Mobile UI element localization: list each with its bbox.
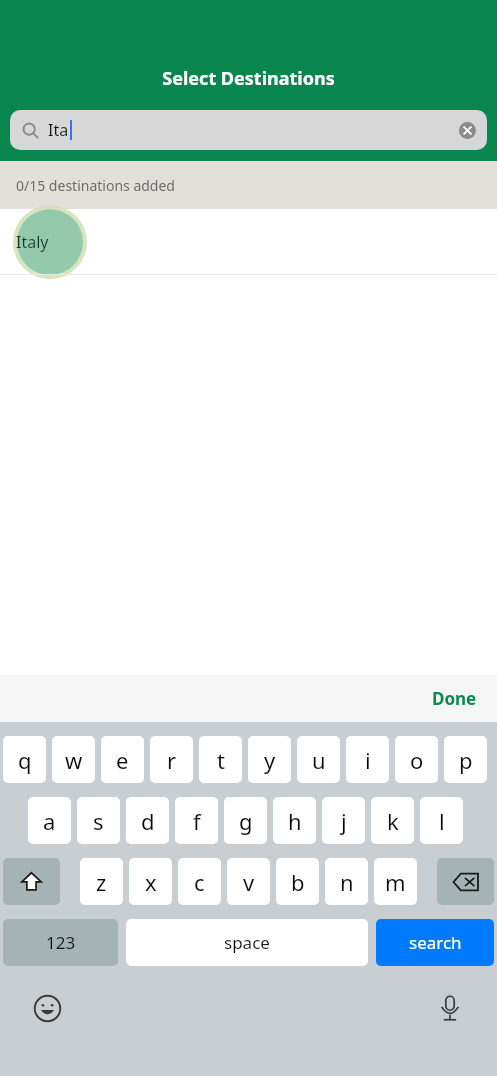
button[interactable]: j — [322, 797, 365, 844]
button[interactable]: n — [325, 858, 368, 905]
button[interactable]: r — [150, 736, 193, 783]
button[interactable]: Emoji keyboard — [28, 989, 66, 1027]
button[interactable]: c — [178, 858, 221, 905]
staticText: Ita — [48, 119, 69, 141]
button[interactable]: f — [175, 797, 218, 844]
button[interactable]: Clear search — [452, 115, 482, 145]
staticText: h — [288, 806, 302, 836]
staticText: Done — [432, 687, 477, 710]
button[interactable]: a — [28, 797, 71, 844]
button[interactable]: Ita — [10, 110, 487, 150]
staticText: i — [365, 745, 371, 775]
staticText: 123 — [46, 931, 76, 954]
button[interactable]: 123 — [3, 919, 118, 966]
button[interactable]: h — [273, 797, 316, 844]
staticText: a — [43, 806, 56, 836]
staticText: Italy — [16, 231, 49, 253]
staticText: n — [340, 867, 354, 897]
staticText: l — [439, 806, 445, 836]
staticText: z — [96, 867, 107, 897]
staticText: q — [18, 745, 32, 775]
staticText: x — [145, 867, 157, 897]
staticText: f — [193, 806, 201, 836]
button[interactable]: e — [101, 736, 144, 783]
staticText: y — [264, 745, 276, 775]
button[interactable]: Shift — [3, 858, 60, 905]
button[interactable]: s — [77, 797, 120, 844]
staticText: o — [410, 745, 424, 775]
button[interactable]: search — [376, 919, 494, 966]
staticText: d — [141, 806, 155, 836]
button[interactable]: w — [52, 736, 95, 783]
staticText: w — [65, 745, 83, 775]
button[interactable]: space — [126, 919, 368, 966]
staticText: search — [409, 931, 462, 954]
button[interactable]: g — [224, 797, 267, 844]
button[interactable]: b — [276, 858, 319, 905]
button[interactable]: z — [80, 858, 123, 905]
staticText: Select Destinations — [0, 66, 497, 91]
staticText: t — [217, 745, 225, 775]
button[interactable]: p — [444, 736, 487, 783]
button[interactable]: t — [199, 736, 242, 783]
button[interactable]: x — [129, 858, 172, 905]
button[interactable]: Backspace — [437, 858, 494, 905]
button[interactable]: l — [420, 797, 463, 844]
button[interactable]: i — [346, 736, 389, 783]
staticText: b — [291, 867, 305, 897]
staticText: u — [312, 745, 326, 775]
staticText: v — [243, 867, 255, 897]
button[interactable]: k — [371, 797, 414, 844]
button[interactable]: Italy — [0, 209, 497, 274]
staticText: space — [224, 931, 270, 954]
staticText: s — [93, 806, 104, 836]
button[interactable]: q — [3, 736, 46, 783]
staticText: c — [194, 867, 205, 897]
button[interactable]: y — [248, 736, 291, 783]
button[interactable]: v — [227, 858, 270, 905]
button[interactable]: Done — [426, 683, 483, 714]
staticText: g — [239, 806, 253, 836]
staticText: j — [341, 806, 347, 836]
button[interactable]: d — [126, 797, 169, 844]
button[interactable]: u — [297, 736, 340, 783]
staticText: p — [459, 745, 473, 775]
staticText: 0/15 destinations added — [16, 176, 175, 195]
staticText: m — [385, 867, 406, 897]
staticText: k — [387, 806, 399, 836]
staticText: e — [116, 745, 129, 775]
button[interactable]: o — [395, 736, 438, 783]
button[interactable]: m — [374, 858, 417, 905]
staticText: r — [167, 745, 177, 775]
button[interactable]: Voice input — [431, 989, 469, 1027]
